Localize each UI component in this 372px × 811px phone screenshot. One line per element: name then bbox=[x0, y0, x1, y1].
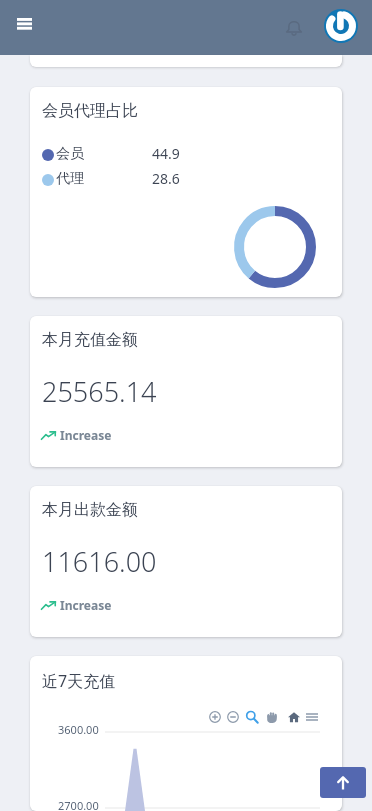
staticText: 会员代理占比 bbox=[42, 101, 138, 121]
staticText: 会员 bbox=[56, 145, 84, 163]
staticText: 本月充值金额 bbox=[42, 330, 138, 350]
staticText: Increase bbox=[60, 427, 112, 443]
button[interactable]: Notifications bbox=[277, 10, 311, 44]
button[interactable]: Menu bbox=[8, 8, 40, 40]
staticText: 44.9 bbox=[152, 144, 180, 163]
staticText: 3600.00 bbox=[58, 722, 99, 737]
button[interactable]: Zoom in bbox=[208, 710, 221, 723]
button[interactable]: Menu bbox=[305, 710, 318, 723]
button[interactable]: Increase bbox=[41, 597, 112, 613]
button[interactable]: 代理 bbox=[30, 167, 342, 192]
button[interactable]: Back to top bbox=[320, 767, 366, 798]
button[interactable]: Profile bbox=[324, 9, 358, 43]
button[interactable]: Selection zoom bbox=[245, 710, 258, 723]
staticText: 代理 bbox=[56, 170, 84, 188]
staticText: Increase bbox=[60, 597, 112, 613]
button[interactable]: Reset zoom bbox=[287, 710, 300, 723]
button[interactable]: Pan bbox=[265, 710, 278, 723]
staticText: 近7天充值 bbox=[42, 670, 116, 692]
button[interactable]: Increase bbox=[41, 427, 112, 443]
staticText: 2700.00 bbox=[58, 798, 99, 811]
staticText: 25565.14 bbox=[42, 373, 157, 410]
button[interactable]: 会员 bbox=[30, 142, 342, 167]
staticText: 本月出款金额 bbox=[42, 500, 138, 520]
staticText: 28.6 bbox=[152, 169, 180, 188]
staticText: 11616.00 bbox=[42, 543, 157, 580]
button[interactable]: Zoom out bbox=[226, 710, 239, 723]
